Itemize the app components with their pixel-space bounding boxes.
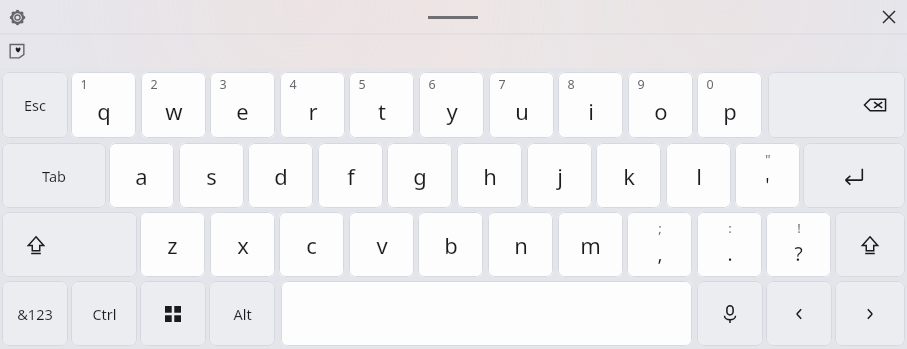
button[interactable]: Close bbox=[875, 4, 903, 30]
staticText: ! bbox=[797, 219, 801, 237]
staticText: &123 bbox=[17, 304, 53, 324]
button[interactable]: 4 bbox=[280, 72, 345, 138]
button[interactable]: j bbox=[527, 143, 592, 208]
button[interactable]: 8 bbox=[558, 72, 623, 138]
staticText: x bbox=[237, 230, 249, 260]
button[interactable]: a bbox=[109, 143, 174, 208]
staticText: ' bbox=[765, 172, 770, 198]
button[interactable]: 2 bbox=[141, 72, 206, 138]
staticText: w bbox=[165, 96, 183, 126]
button[interactable]: Space bbox=[281, 281, 692, 346]
staticText: f bbox=[347, 161, 355, 191]
button[interactable]: Left bbox=[766, 281, 832, 346]
staticText: 3 bbox=[219, 76, 227, 93]
button[interactable]: : bbox=[697, 212, 762, 277]
staticText: z bbox=[167, 230, 178, 260]
button[interactable]: Shift bbox=[835, 212, 905, 277]
button[interactable]: Ctrl bbox=[71, 281, 137, 346]
staticText: 2 bbox=[150, 76, 158, 93]
staticText: ? bbox=[794, 241, 803, 267]
button[interactable]: " bbox=[735, 143, 800, 208]
staticText: b bbox=[444, 230, 458, 260]
button[interactable]: d bbox=[248, 143, 313, 208]
button[interactable]: l bbox=[666, 143, 731, 208]
button[interactable]: c bbox=[279, 212, 344, 277]
staticText: , bbox=[657, 241, 663, 267]
staticText: c bbox=[306, 230, 317, 260]
staticText: Ctrl bbox=[92, 304, 117, 324]
staticText: Alt bbox=[233, 304, 252, 324]
staticText: Tab bbox=[42, 166, 66, 186]
button[interactable]: Tab bbox=[2, 143, 106, 208]
staticText: p bbox=[723, 96, 737, 126]
staticText: q bbox=[97, 96, 111, 126]
button[interactable]: Backspace bbox=[768, 72, 905, 138]
button[interactable]: Windows bbox=[140, 281, 206, 346]
button[interactable]: Esc bbox=[2, 72, 68, 138]
staticText: m bbox=[580, 230, 601, 260]
staticText: Esc bbox=[24, 95, 46, 115]
button[interactable]: 9 bbox=[628, 72, 693, 138]
staticText: i bbox=[588, 96, 594, 126]
staticText: 4 bbox=[289, 76, 297, 93]
button[interactable]: Move keyboard bbox=[420, 8, 486, 26]
button[interactable]: 7 bbox=[489, 72, 554, 138]
button[interactable]: &123 bbox=[2, 281, 68, 346]
staticText: u bbox=[515, 96, 529, 126]
staticText: s bbox=[206, 161, 217, 191]
button[interactable]: Right bbox=[835, 281, 905, 346]
button[interactable]: z bbox=[140, 212, 205, 277]
staticText: j bbox=[557, 161, 563, 191]
button[interactable]: n bbox=[488, 212, 553, 277]
button[interactable]: Alt bbox=[209, 281, 275, 346]
staticText: o bbox=[654, 96, 668, 126]
staticText: v bbox=[376, 230, 388, 260]
button[interactable]: 3 bbox=[210, 72, 275, 138]
staticText: 8 bbox=[567, 76, 575, 93]
button[interactable]: ! bbox=[766, 212, 831, 277]
staticText: a bbox=[135, 161, 148, 191]
staticText: e bbox=[236, 96, 249, 126]
staticText: 9 bbox=[637, 76, 645, 93]
staticText: 0 bbox=[706, 76, 714, 93]
staticText: g bbox=[413, 161, 427, 191]
button[interactable]: 6 bbox=[419, 72, 484, 138]
staticText: h bbox=[483, 161, 497, 191]
staticText: 6 bbox=[428, 76, 436, 93]
button[interactable]: b bbox=[418, 212, 483, 277]
button[interactable]: s bbox=[179, 143, 244, 208]
staticText: . bbox=[727, 241, 733, 267]
button[interactable]: ; bbox=[627, 212, 692, 277]
button[interactable]: 5 bbox=[349, 72, 414, 138]
staticText: : bbox=[728, 219, 732, 237]
button[interactable]: m bbox=[558, 212, 623, 277]
staticText: l bbox=[696, 161, 702, 191]
staticText: n bbox=[514, 230, 528, 260]
staticText: d bbox=[274, 161, 288, 191]
button[interactable]: Shift bbox=[2, 212, 137, 277]
button[interactable]: x bbox=[210, 212, 275, 277]
staticText: y bbox=[446, 96, 458, 126]
button[interactable]: Keyboard settings bbox=[4, 4, 30, 30]
staticText: 7 bbox=[498, 76, 506, 93]
staticText: 5 bbox=[358, 76, 366, 93]
staticText: 1 bbox=[80, 76, 88, 93]
staticText: " bbox=[765, 150, 771, 168]
staticText: k bbox=[623, 161, 635, 191]
staticText: r bbox=[308, 96, 318, 126]
button[interactable]: f bbox=[318, 143, 383, 208]
staticText: t bbox=[378, 96, 386, 126]
button[interactable]: h bbox=[457, 143, 522, 208]
button[interactable]: 0 bbox=[697, 72, 762, 138]
staticText: ; bbox=[658, 219, 662, 237]
button[interactable]: k bbox=[596, 143, 661, 208]
button[interactable]: Enter bbox=[803, 143, 905, 208]
button[interactable]: g bbox=[387, 143, 452, 208]
button[interactable]: v bbox=[349, 212, 414, 277]
button[interactable]: Emoji and stickers bbox=[3, 38, 31, 64]
button[interactable]: Voice typing bbox=[697, 281, 763, 346]
button[interactable]: 1 bbox=[71, 72, 136, 138]
